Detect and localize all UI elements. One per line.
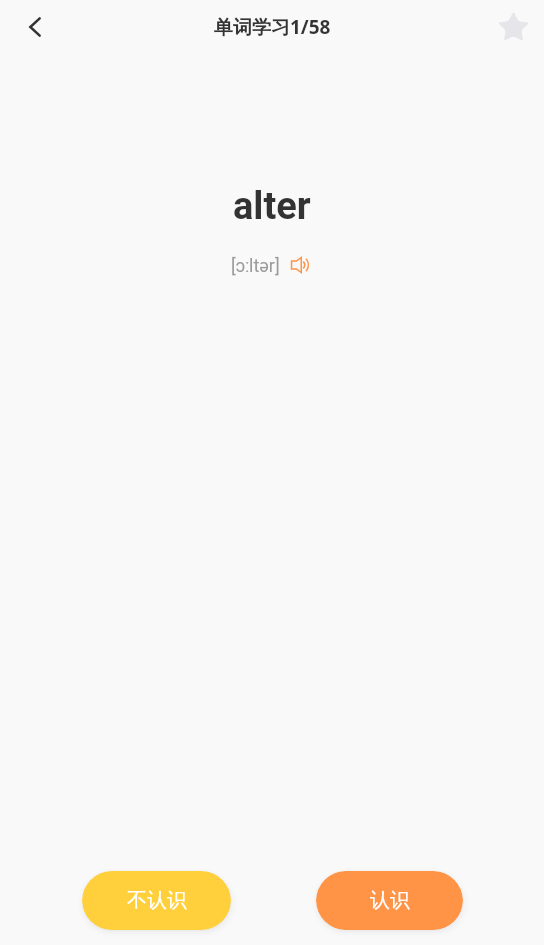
button[interactable]: 认识 [316,871,463,930]
staticText: alter [233,184,311,229]
button[interactable]: 不认识 [82,871,231,930]
button[interactable]: Favorite [489,3,537,51]
button[interactable]: Play pronunciation [287,252,313,278]
staticText: [ɔːltər] [231,255,280,276]
staticText: 不认识 [127,888,187,913]
button[interactable]: Back [11,3,59,51]
staticText: 单词学习1/58 [214,14,331,40]
staticText: 认识 [370,888,410,913]
